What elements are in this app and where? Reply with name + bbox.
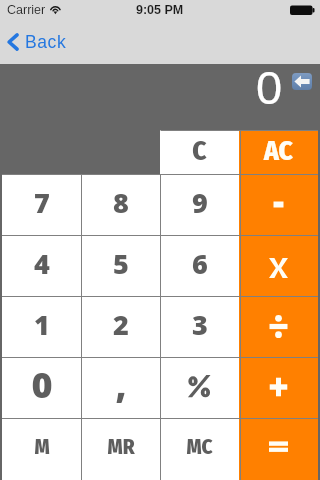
button[interactable]: Plus [239, 358, 318, 419]
staticText: 7 [34, 184, 50, 221]
button[interactable]: MC [160, 419, 239, 480]
staticText: 9 [192, 184, 208, 221]
button[interactable]: Minus [239, 174, 318, 236]
button[interactable]: 5 [81, 236, 160, 297]
button[interactable]: 0 [2, 358, 81, 419]
button[interactable]: Divide [239, 297, 318, 358]
button[interactable]: 4 [2, 236, 81, 297]
staticText: 8 [113, 184, 129, 221]
button[interactable]: , [81, 358, 160, 419]
button[interactable]: C [160, 130, 239, 174]
staticText: 4 [34, 245, 50, 282]
button[interactable]: M [2, 419, 81, 480]
button[interactable]: 8 [81, 174, 160, 236]
staticText: 6 [192, 245, 208, 282]
staticText: MC [186, 434, 213, 459]
button[interactable]: 2 [81, 297, 160, 358]
staticText: 2 [113, 306, 129, 343]
staticText: 0 [256, 61, 283, 114]
staticText: MR [107, 434, 135, 459]
staticText: 9:05 PM [136, 3, 184, 17]
button[interactable]: MR [81, 419, 160, 480]
staticText: Back [25, 32, 67, 52]
staticText: 5 [113, 245, 129, 282]
staticText: C [192, 135, 207, 167]
staticText: Carrier [7, 3, 46, 17]
button[interactable]: Multiply [239, 236, 318, 297]
button[interactable]: Backspace [292, 73, 312, 90]
button[interactable]: 1 [2, 297, 81, 358]
button[interactable]: 9 [160, 174, 239, 236]
button[interactable]: 6 [160, 236, 239, 297]
staticText: , [115, 360, 127, 409]
staticText: 1 [34, 306, 50, 343]
button[interactable]: Back [0, 26, 75, 58]
staticText: AC [264, 135, 293, 167]
button[interactable]: Equals [239, 419, 318, 480]
staticText: 3 [192, 306, 208, 343]
staticText: M [34, 434, 50, 459]
button[interactable]: 3 [160, 297, 239, 358]
staticText: 0 [31, 360, 53, 409]
button[interactable]: Percent [160, 358, 239, 419]
button[interactable]: 7 [2, 174, 81, 236]
button[interactable]: AC [239, 130, 318, 174]
